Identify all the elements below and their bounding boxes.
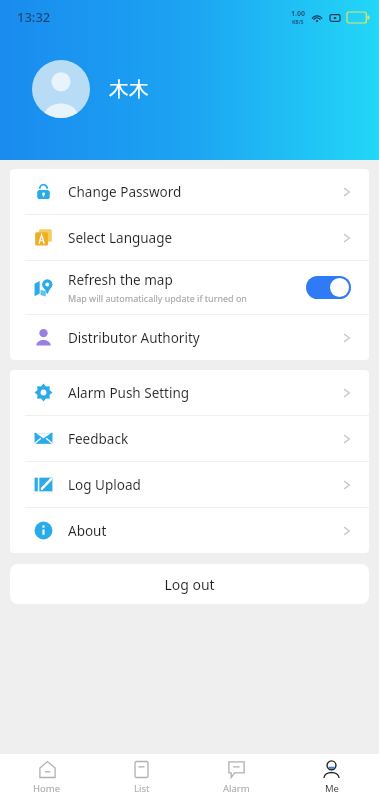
button[interactable]: Me bbox=[284, 754, 379, 800]
staticText: KB/S bbox=[292, 19, 304, 26]
button[interactable]: Home bbox=[0, 754, 94, 800]
staticText: Home bbox=[33, 782, 61, 795]
button[interactable]: Refresh the map toggle bbox=[306, 276, 351, 299]
button[interactable]: Log Upload bbox=[10, 462, 369, 507]
staticText: Change Password bbox=[68, 183, 182, 201]
button[interactable]: Distributor Authority bbox=[10, 315, 369, 360]
staticText: Select Language bbox=[68, 229, 173, 247]
button[interactable]: Select Language bbox=[10, 215, 369, 260]
button[interactable]: About bbox=[10, 508, 369, 553]
staticText: Map will automatically update if turned … bbox=[68, 292, 247, 304]
button[interactable]: Alarm Push Setting bbox=[10, 370, 369, 415]
staticText: List bbox=[134, 782, 150, 795]
button[interactable]: List bbox=[94, 754, 189, 800]
staticText: Feedback bbox=[68, 430, 129, 448]
button[interactable]: Log out bbox=[10, 564, 369, 604]
staticText: About bbox=[68, 522, 107, 540]
staticText: 1.00 bbox=[291, 9, 305, 19]
staticText: 木木 bbox=[109, 77, 149, 102]
staticText: 13:32 bbox=[17, 8, 51, 26]
button[interactable]: Change Password bbox=[10, 169, 369, 214]
staticText: Alarm Push Setting bbox=[68, 384, 190, 402]
staticText: Refresh the map bbox=[68, 271, 173, 289]
staticText: Distributor Authority bbox=[68, 329, 200, 347]
staticText: Log out bbox=[164, 575, 215, 594]
button[interactable]: Refresh the map bbox=[10, 261, 369, 314]
staticText: Me bbox=[325, 782, 339, 795]
button[interactable]: Feedback bbox=[10, 416, 369, 461]
staticText: Log Upload bbox=[68, 476, 141, 494]
button[interactable]: Alarm bbox=[189, 754, 284, 800]
staticText: Alarm bbox=[223, 782, 250, 795]
